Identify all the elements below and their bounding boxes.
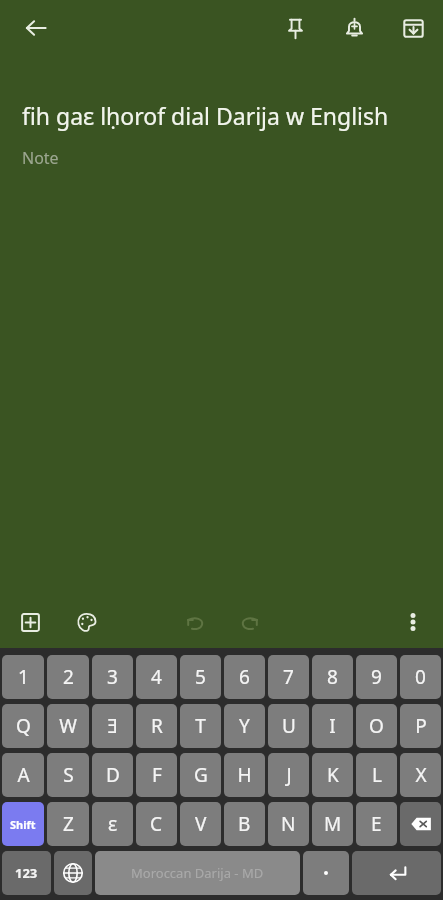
button[interactable]: D bbox=[92, 753, 133, 797]
button[interactable] bbox=[303, 851, 349, 895]
staticText: V bbox=[195, 811, 207, 837]
staticText: W bbox=[59, 713, 77, 739]
button[interactable]: Redo bbox=[227, 599, 273, 645]
staticText: ɛ bbox=[108, 811, 118, 837]
button[interactable]: H bbox=[224, 753, 265, 797]
button[interactable]: B bbox=[224, 802, 265, 846]
button[interactable]: 1 bbox=[2, 655, 44, 699]
button[interactable]: Space bbox=[95, 851, 300, 895]
button[interactable]: 3 bbox=[92, 655, 133, 699]
staticText: fih gaɛ lḥorof dial Darija w English bbox=[22, 100, 389, 131]
button[interactable]: N bbox=[268, 802, 309, 846]
staticText: 4 bbox=[151, 664, 162, 690]
staticText: C bbox=[150, 811, 163, 837]
button[interactable]: Pin note bbox=[271, 4, 319, 52]
staticText: A bbox=[17, 762, 30, 788]
staticText: I bbox=[329, 713, 336, 739]
staticText: T bbox=[195, 713, 206, 739]
button[interactable]: 123 bbox=[2, 851, 51, 895]
staticText: 7 bbox=[283, 664, 294, 690]
button[interactable]: 5 bbox=[180, 655, 221, 699]
staticText: 0 bbox=[415, 664, 426, 690]
staticText: Moroccan Darija - MD bbox=[131, 864, 264, 882]
button[interactable]: Change language bbox=[54, 851, 92, 895]
staticText: G bbox=[194, 762, 208, 788]
button[interactable]: F bbox=[136, 753, 177, 797]
button[interactable]: Reminder bbox=[330, 4, 378, 52]
staticText: Y bbox=[239, 713, 250, 739]
button[interactable]: L bbox=[356, 753, 397, 797]
staticText: 1 bbox=[18, 664, 29, 690]
staticText: E bbox=[371, 811, 382, 837]
button[interactable]: K bbox=[312, 753, 353, 797]
button[interactable]: U bbox=[268, 704, 309, 748]
staticText: Note bbox=[22, 147, 59, 169]
button[interactable]: Change color bbox=[63, 599, 109, 645]
button[interactable]: G bbox=[180, 753, 221, 797]
staticText: H bbox=[237, 762, 252, 788]
staticText: K bbox=[327, 762, 339, 788]
button[interactable]: Q bbox=[2, 704, 44, 748]
staticText: O bbox=[369, 713, 384, 739]
staticText: L bbox=[372, 762, 382, 788]
staticText: Z bbox=[63, 811, 74, 837]
button[interactable]: ɛ bbox=[92, 802, 133, 846]
button[interactable]: Add bbox=[7, 599, 53, 645]
button[interactable]: V bbox=[180, 802, 221, 846]
button[interactable]: O bbox=[356, 704, 397, 748]
button[interactable]: Y bbox=[224, 704, 265, 748]
button[interactable]: P bbox=[400, 704, 441, 748]
button[interactable]: Enter bbox=[352, 851, 441, 895]
staticText: P bbox=[415, 713, 427, 739]
staticText: U bbox=[282, 713, 296, 739]
staticText: 6 bbox=[239, 664, 250, 690]
button[interactable]: Archive bbox=[389, 4, 437, 52]
button[interactable]: T bbox=[180, 704, 221, 748]
button[interactable]: W bbox=[47, 704, 89, 748]
staticText: B bbox=[238, 811, 251, 837]
staticText: Ǝ bbox=[107, 713, 118, 739]
staticText: X bbox=[415, 762, 427, 788]
button[interactable]: X bbox=[400, 753, 441, 797]
button[interactable]: 0 bbox=[400, 655, 441, 699]
button[interactable]: S bbox=[47, 753, 89, 797]
button[interactable]: 9 bbox=[356, 655, 397, 699]
button[interactable]: Backspace bbox=[400, 802, 441, 846]
staticText: 123 bbox=[15, 864, 38, 882]
staticText: Q bbox=[16, 713, 31, 739]
button[interactable]: 4 bbox=[136, 655, 177, 699]
button[interactable]: A bbox=[2, 753, 44, 797]
button[interactable]: More options bbox=[390, 599, 436, 645]
staticText: M bbox=[324, 811, 342, 837]
button[interactable]: Z bbox=[47, 802, 89, 846]
staticText: 3 bbox=[107, 664, 118, 690]
staticText: 5 bbox=[195, 664, 206, 690]
button[interactable]: 2 bbox=[47, 655, 89, 699]
button[interactable]: Undo bbox=[171, 599, 217, 645]
button[interactable]: Back bbox=[12, 4, 60, 52]
staticText: S bbox=[63, 762, 74, 788]
staticText: 9 bbox=[371, 664, 382, 690]
staticText: 8 bbox=[327, 664, 338, 690]
button[interactable]: M bbox=[312, 802, 353, 846]
button[interactable]: R bbox=[136, 704, 177, 748]
staticText: J bbox=[286, 762, 292, 788]
staticText: Shift bbox=[10, 817, 36, 832]
staticText: D bbox=[106, 762, 120, 788]
button[interactable]: Ǝ bbox=[92, 704, 133, 748]
button[interactable]: C bbox=[136, 802, 177, 846]
button[interactable]: 8 bbox=[312, 655, 353, 699]
staticText: R bbox=[151, 713, 163, 739]
button[interactable]: J bbox=[268, 753, 309, 797]
staticText: N bbox=[281, 811, 296, 837]
staticText: F bbox=[152, 762, 162, 788]
button[interactable]: 6 bbox=[224, 655, 265, 699]
button[interactable]: fih gaɛ lḥorof dial Darija w English bbox=[22, 100, 421, 131]
button[interactable]: Shift bbox=[2, 802, 44, 846]
button[interactable]: Note bbox=[22, 147, 421, 169]
button[interactable]: 7 bbox=[268, 655, 309, 699]
button[interactable]: I bbox=[312, 704, 353, 748]
staticText: 2 bbox=[63, 664, 74, 690]
button[interactable]: E bbox=[356, 802, 397, 846]
